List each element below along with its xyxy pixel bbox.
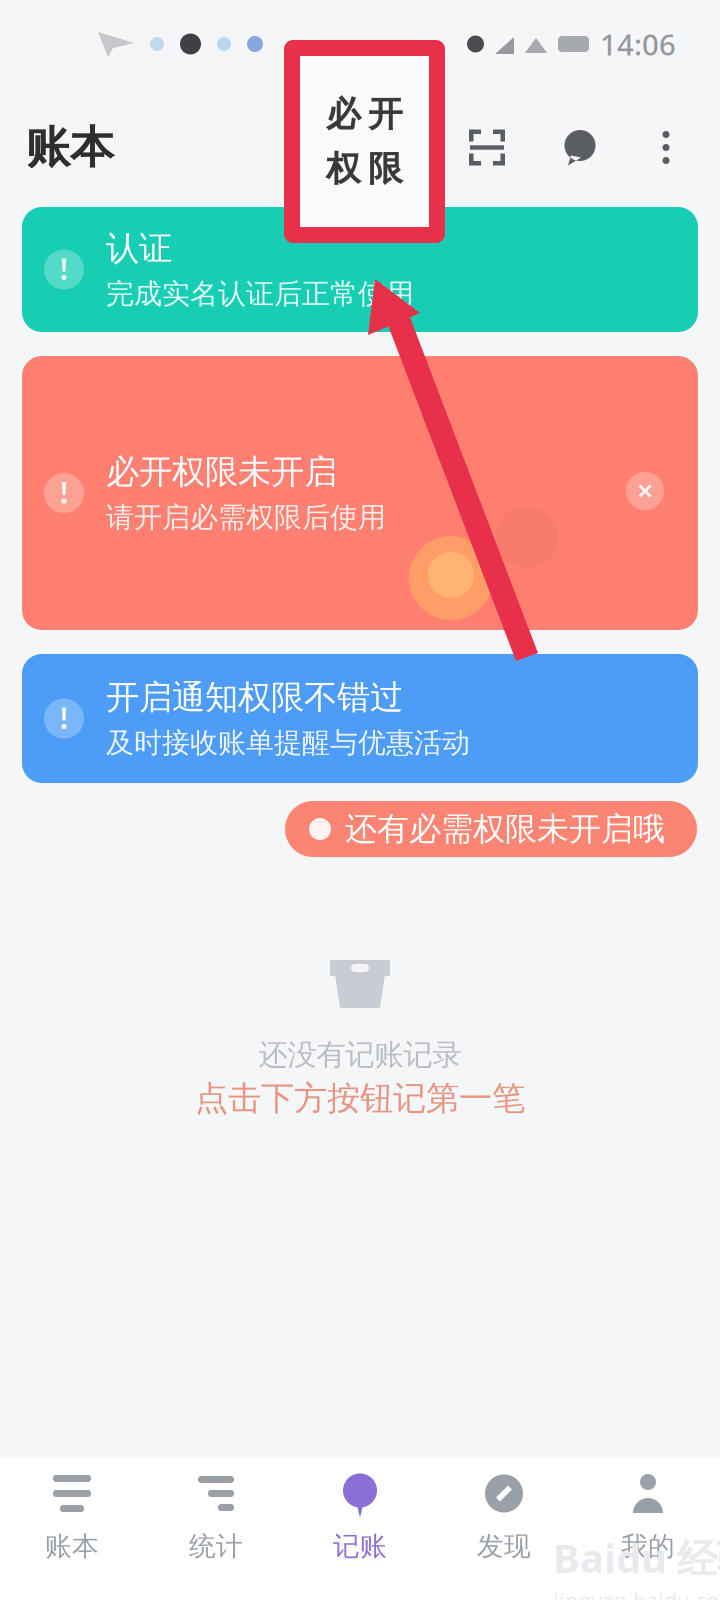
button[interactable]: 扫一扫	[464, 124, 510, 170]
staticText: 完成实名认证后正常使用	[106, 277, 414, 311]
button[interactable]: 统计	[144, 1458, 288, 1600]
button[interactable]: 更多	[651, 124, 681, 170]
staticText: 统计	[189, 1530, 243, 1563]
staticText: 还没有记账记录	[258, 1037, 461, 1073]
staticText: 认证	[106, 228, 172, 269]
button[interactable]: 必开权限未开启	[22, 356, 698, 630]
staticText: 及时接收账单提醒与优惠活动	[106, 726, 470, 760]
button[interactable]: 还有必需权限未开启哦	[285, 801, 697, 857]
staticText: 还有必需权限未开启哦	[345, 809, 665, 849]
staticText: 发现	[477, 1530, 531, 1563]
button[interactable]: 关闭	[626, 472, 664, 510]
staticText: Baidu 经验	[553, 1531, 720, 1584]
button[interactable]: 点击下方按钮记第一笔	[183, 1075, 537, 1122]
staticText: 请开启必需权限后使用	[106, 500, 386, 535]
staticText: 我的	[621, 1530, 675, 1563]
staticText: 必开权限未开启	[106, 451, 337, 492]
button[interactable]: 消息	[557, 124, 603, 170]
staticText: 14:06	[600, 24, 676, 63]
staticText: 账本	[45, 1530, 99, 1563]
staticText: 账本	[26, 120, 114, 174]
staticText: jingyan.baidu.com	[553, 1586, 720, 1600]
button[interactable]: 开启通知权限不错过	[22, 654, 698, 783]
button[interactable]: 账本	[0, 1458, 144, 1600]
button[interactable]: 认证	[22, 207, 698, 332]
button[interactable]: 记账	[288, 1458, 432, 1600]
button[interactable]: 我的	[576, 1458, 720, 1600]
staticText: 权限	[326, 147, 403, 190]
staticText: 开启通知权限不错过	[106, 677, 403, 718]
staticText: 记账	[333, 1530, 387, 1563]
button[interactable]: 发现	[432, 1458, 576, 1600]
staticText: 点击下方按钮记第一笔	[195, 1078, 525, 1119]
staticText: 必开	[326, 93, 403, 135]
